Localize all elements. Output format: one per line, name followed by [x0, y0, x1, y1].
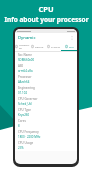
button[interactable]: More options: [68, 34, 75, 41]
staticText: Info about your processor: [4, 15, 89, 24]
button[interactable]: ABI: [18, 63, 74, 74]
staticText: 01.102: [18, 91, 28, 95]
staticText: Kryo260: [18, 113, 30, 117]
staticText: Engineering: [18, 86, 35, 90]
staticText: Sched_Util: [18, 102, 33, 106]
button[interactable]: Soc Name: [18, 52, 74, 63]
staticText: Soc Name: [18, 53, 32, 57]
staticText: 23%: [18, 146, 24, 150]
button[interactable]: Processor: [18, 74, 74, 85]
button[interactable]: Cores: [18, 118, 74, 129]
button[interactable]: CPU Type: [18, 107, 74, 118]
staticText: CPU Governor: [18, 97, 38, 101]
button[interactable]: SYSTEM: [45, 42, 61, 50]
staticText: arm64-v8a: [18, 69, 33, 73]
button[interactable]: DEVICE: [30, 42, 45, 50]
button[interactable]: CPU: [61, 42, 77, 50]
staticText: SYSTEM: [51, 45, 60, 48]
button[interactable]: HARDWARE: [15, 42, 30, 50]
staticText: HARDWARE: [19, 43, 30, 49]
staticText: SDM660x00: [18, 58, 35, 62]
button[interactable]: CPU Usage: [18, 140, 74, 151]
staticText: DEVICE: [35, 45, 44, 48]
staticText: 1800 · 2200 MHz: [18, 135, 41, 139]
staticText: Processor: [18, 75, 32, 79]
staticText: CPU Usage: [18, 141, 34, 145]
staticText: CPU Frequency: [18, 130, 39, 134]
button[interactable]: Engineering: [18, 85, 74, 96]
staticText: 8: [18, 124, 20, 128]
staticText: CPU: [69, 45, 74, 48]
staticText: Cores: [18, 119, 26, 123]
staticText: CPU Type: [18, 108, 32, 112]
staticText: CPU: [38, 4, 54, 14]
button[interactable]: CPU Frequency: [18, 129, 74, 140]
staticText: AArch64: [18, 80, 30, 84]
button[interactable]: CPU Governor: [18, 96, 74, 107]
staticText: Dynamic: [18, 35, 36, 41]
staticText: ABI: [18, 64, 23, 68]
